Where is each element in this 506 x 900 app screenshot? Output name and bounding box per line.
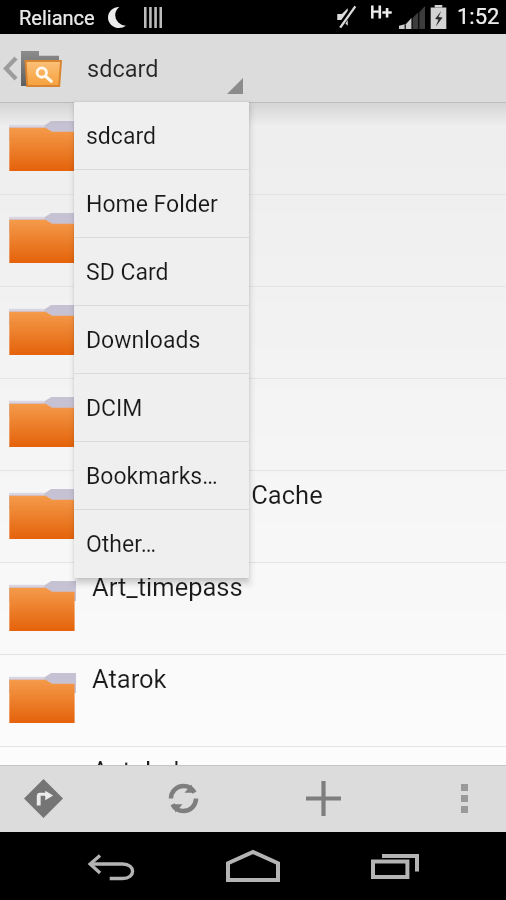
staticText: Atarok [92, 664, 167, 694]
button[interactable]: Downloads [74, 306, 249, 374]
staticText: Downloads [86, 327, 201, 354]
button[interactable]: Recents [361, 832, 429, 900]
staticText: sdcard [87, 55, 159, 83]
staticText: sdcard [86, 123, 156, 150]
button[interactable]: Art_timepass [0, 563, 506, 655]
staticText: Other… [86, 531, 157, 558]
staticText: Autobahn [92, 756, 202, 765]
button[interactable]: Add [292, 765, 354, 832]
button[interactable]: Atarok [0, 655, 506, 747]
staticText: H+ [370, 2, 392, 22]
button[interactable]: Refresh [152, 765, 214, 832]
button[interactable]: More options [433, 765, 495, 832]
button[interactable]: Application [0, 287, 506, 379]
staticText: Home Folder [86, 191, 218, 218]
button[interactable]: Alarms [0, 195, 506, 287]
staticText: Apps [92, 388, 151, 418]
staticText: Alarms [92, 204, 173, 234]
staticText: Amazon MP3 Cache [92, 480, 323, 510]
button[interactable]: Android [0, 103, 506, 195]
staticText: Bookmarks… [86, 463, 218, 490]
staticText: Reliance [19, 6, 95, 29]
staticText: Art_timepass [92, 572, 243, 602]
button[interactable]: SD Card [74, 238, 249, 306]
button[interactable]: sdcard [74, 102, 249, 170]
staticText: Android [92, 112, 181, 142]
button[interactable]: sdcard [0, 34, 180, 103]
staticText: Application [92, 296, 221, 326]
button[interactable]: Home [219, 832, 287, 900]
button[interactable]: Amazon MP3 Cache [0, 471, 506, 563]
button[interactable]: Back [78, 832, 146, 900]
button[interactable]: Autobahn [0, 747, 506, 765]
button[interactable]: Home Folder [74, 170, 249, 238]
button[interactable]: Other… [74, 510, 249, 578]
staticText: DCIM [86, 395, 143, 422]
staticText: SD Card [86, 259, 169, 286]
button[interactable]: Apps [0, 379, 506, 471]
button[interactable]: DCIM [74, 374, 249, 442]
button[interactable]: Send [12, 765, 74, 832]
staticText: 1:52 [457, 4, 500, 30]
button[interactable]: Bookmarks… [74, 442, 249, 510]
